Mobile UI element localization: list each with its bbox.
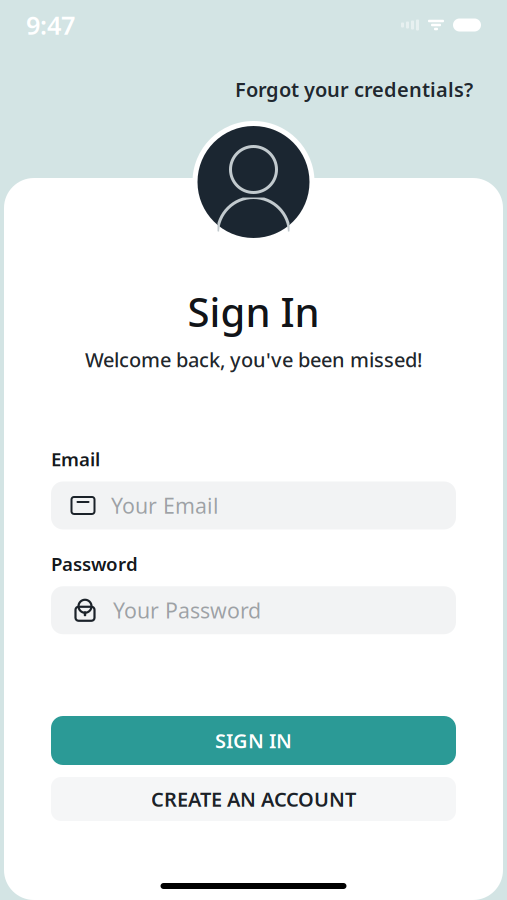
staticText: Password	[51, 551, 138, 576]
button[interactable]: SIGN IN	[51, 716, 456, 765]
button[interactable]: Forgot your credentials?	[235, 76, 473, 103]
staticText: 9:47	[26, 8, 75, 42]
staticText: Email	[51, 447, 100, 471]
staticText: Welcome back, you've been missed!	[85, 346, 422, 373]
staticText: Your Email	[111, 491, 219, 520]
staticText: Sign In	[187, 285, 319, 338]
staticText: CREATE AN ACCOUNT	[151, 786, 356, 812]
button[interactable]: CREATE AN ACCOUNT	[51, 777, 456, 821]
button[interactable]: Your Email	[51, 481, 456, 529]
staticText: Forgot your credentials?	[235, 76, 473, 103]
staticText: Your Password	[113, 596, 261, 624]
staticText: SIGN IN	[215, 727, 292, 754]
button[interactable]: Your Password	[51, 586, 456, 634]
